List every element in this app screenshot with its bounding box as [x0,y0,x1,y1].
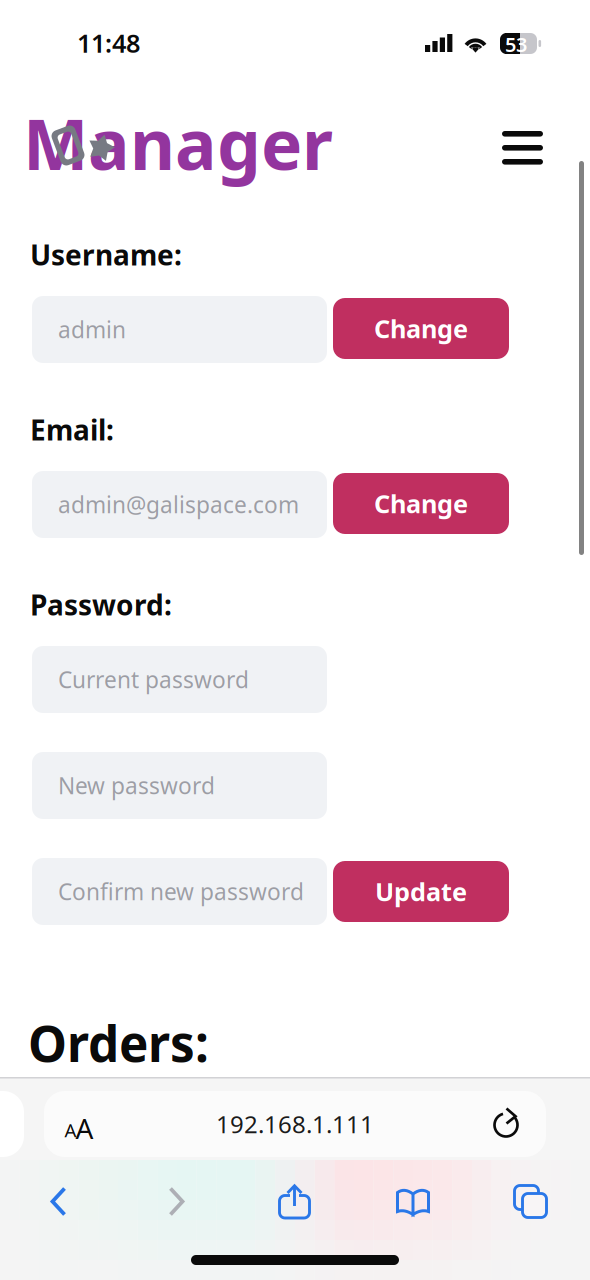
button[interactable]: Bookmarks [354,1169,472,1235]
button[interactable]: Forward [118,1169,236,1235]
button[interactable]: Tabs [472,1169,590,1235]
button[interactable]: Reload [477,1091,535,1157]
staticText: A [64,1117,76,1142]
staticText: Username: [30,236,182,273]
staticText: Email: [30,411,114,448]
button[interactable]: Page settings [47,1089,111,1155]
staticText: 11:48 [77,26,140,60]
staticText: Change [374,487,468,520]
button[interactable]: Update [333,861,509,922]
staticText: admin@galispace.com [58,489,299,519]
staticText: Orders: [28,1010,209,1075]
staticText: Update [375,875,467,908]
button[interactable]: Change [333,298,509,359]
button[interactable]: Change [333,473,509,534]
staticText: New password [58,770,215,800]
staticText: Confirm new password [58,876,304,906]
staticText: Change [374,312,468,345]
staticText: admin [58,314,126,344]
staticText: 53 [505,31,527,58]
button[interactable]: Back [0,1169,118,1235]
staticText: A [75,1109,93,1147]
staticText: 192.168.1.111 [216,1108,374,1140]
staticText: Manager [23,97,333,189]
button[interactable]: Share [236,1169,354,1235]
button[interactable]: Menu [502,131,543,165]
staticText: Current password [58,664,249,694]
staticText: Password: [30,586,172,623]
